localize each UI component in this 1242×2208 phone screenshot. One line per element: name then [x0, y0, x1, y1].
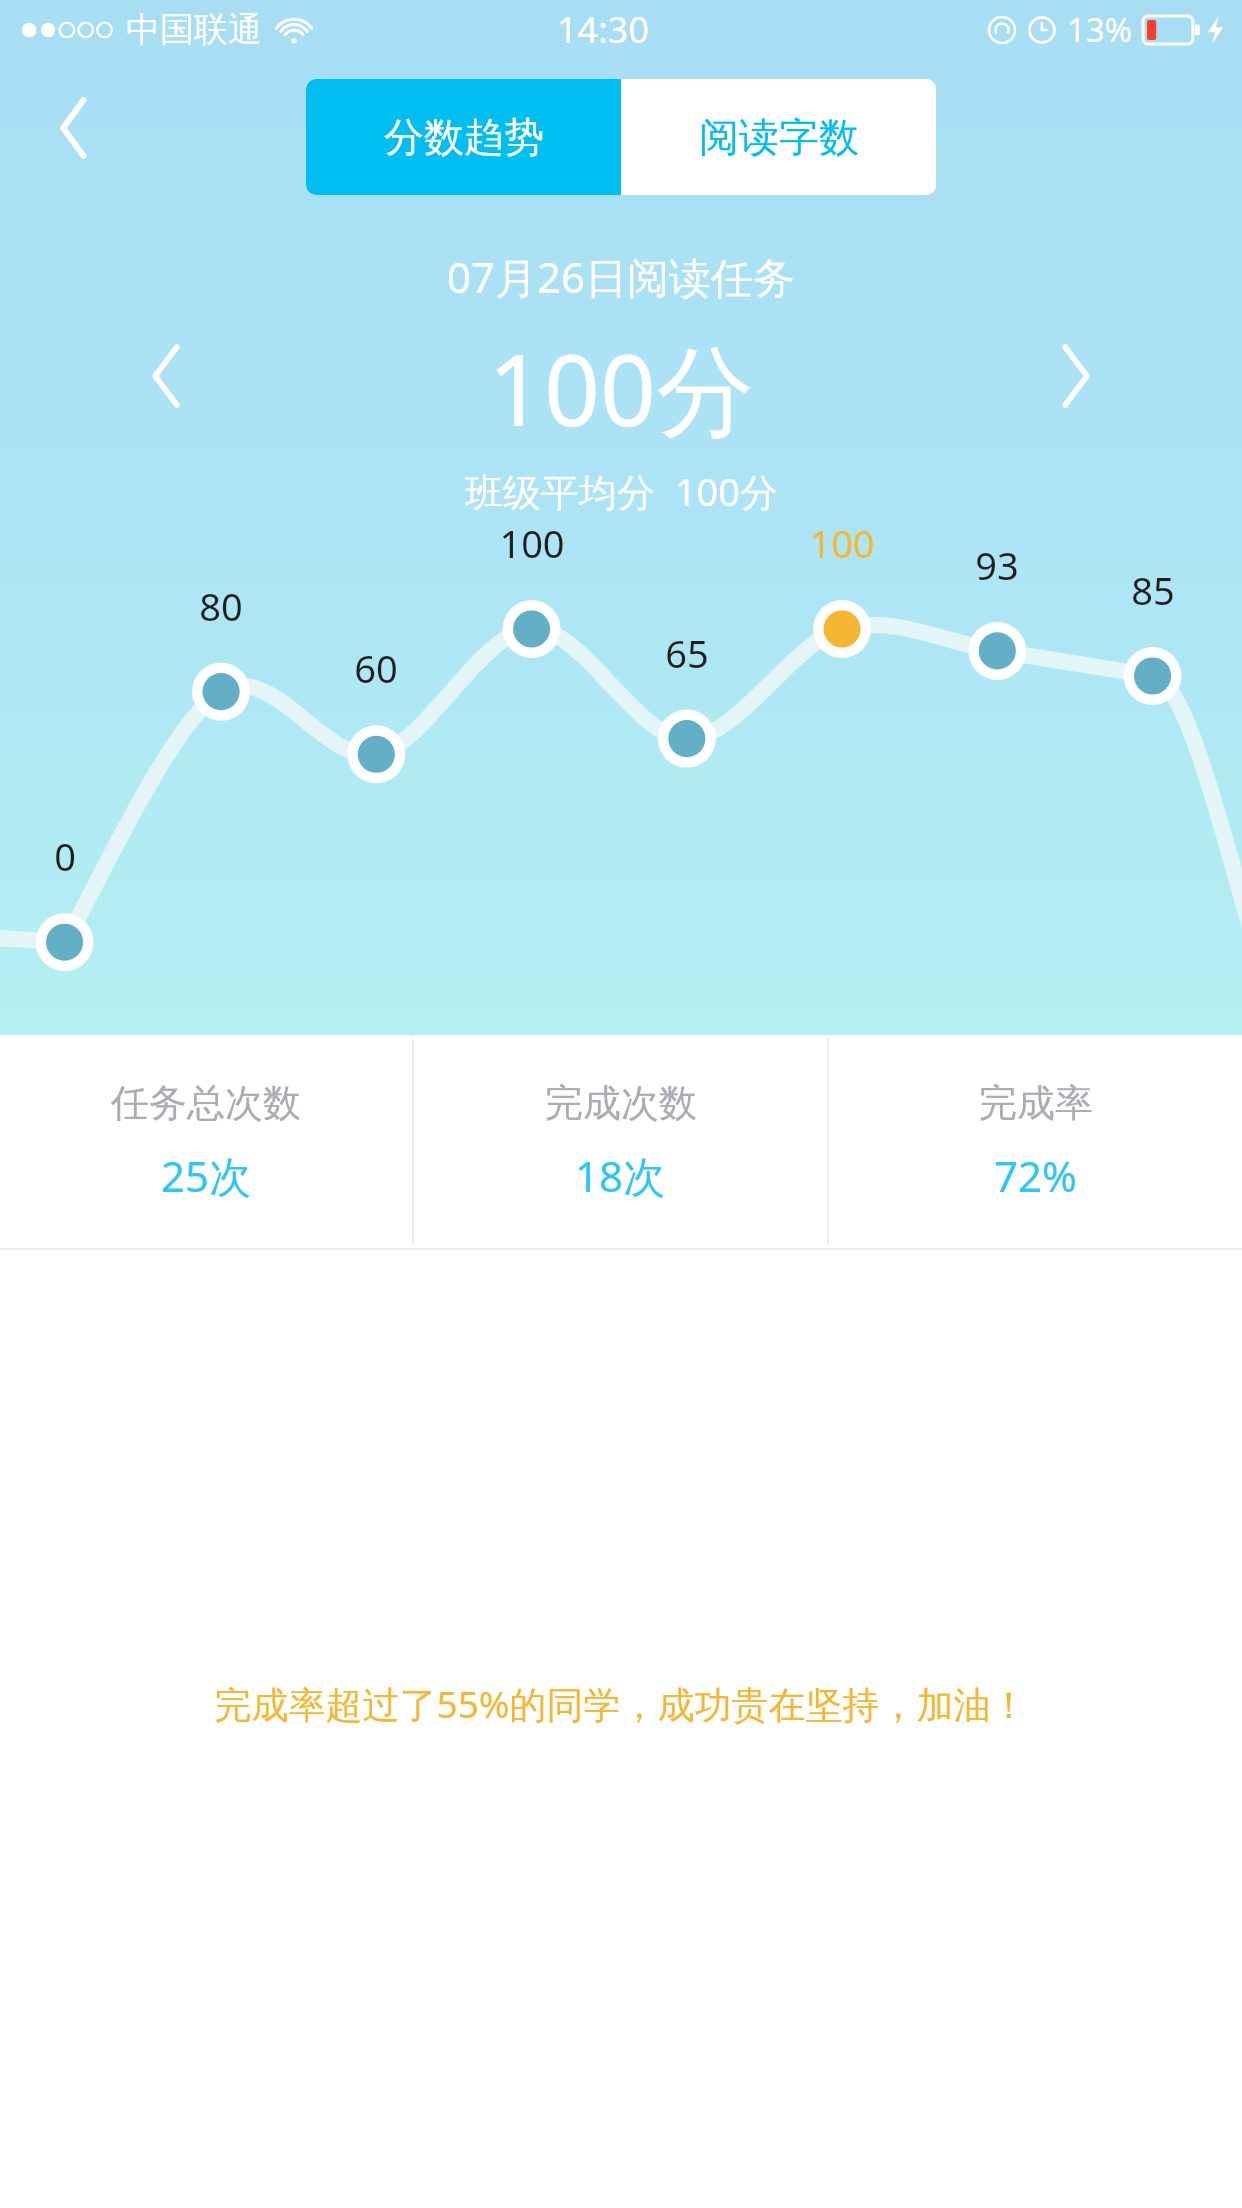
button[interactable]: 完成率	[829, 1035, 1242, 1248]
button[interactable]: 任务总次数	[0, 1035, 412, 1248]
button[interactable]: 分数趋势	[306, 79, 621, 195]
staticText: 60	[354, 642, 398, 694]
staticText: 25次	[161, 1147, 252, 1204]
button[interactable]: Next day	[1028, 328, 1124, 424]
staticText: 完成次数	[545, 1079, 697, 1127]
button[interactable]: 完成次数	[414, 1035, 827, 1248]
staticText: 完成率超过了55%的同学，成功贵在坚持，加油！	[214, 1678, 1028, 1729]
staticText: 14:30	[557, 5, 650, 54]
staticText: 93	[975, 539, 1019, 591]
staticText: 18次	[575, 1147, 666, 1204]
staticText: 100	[809, 517, 875, 569]
staticText: 13%	[1067, 7, 1133, 52]
staticText: 07月26日阅读任务	[447, 248, 796, 305]
button[interactable]: Back	[28, 82, 120, 174]
button[interactable]: 阅读字数	[621, 79, 936, 195]
staticText: 完成率	[979, 1079, 1093, 1127]
staticText: 72%	[994, 1147, 1077, 1204]
staticText: 阅读字数	[699, 112, 859, 162]
staticText: 班级平均分 100分	[465, 465, 778, 517]
staticText: 中国联通	[126, 8, 262, 51]
staticText: 80	[199, 580, 243, 632]
button[interactable]: Previous day	[118, 328, 214, 424]
staticText: 任务总次数	[111, 1079, 301, 1127]
staticText: 100分	[488, 321, 755, 455]
staticText: 65	[665, 627, 709, 679]
staticText: 100	[499, 517, 565, 569]
staticText: 85	[1131, 564, 1175, 616]
staticText: 0	[54, 830, 76, 882]
staticText: 分数趋势	[384, 112, 544, 162]
